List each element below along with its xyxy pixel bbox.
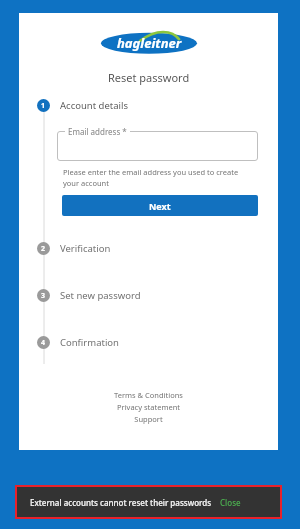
button[interactable]: 4 [19,336,278,349]
staticText: Email address * [68,126,127,137]
staticText: Please enter the email address you used … [63,167,254,188]
button[interactable]: Close [220,497,241,508]
staticText: 2 [41,244,46,254]
button[interactable]: Terms & Conditions [114,390,183,400]
staticText: External accounts cannot reset their pas… [30,497,212,508]
staticText: Terms & Conditions [114,390,183,400]
staticText: 4 [41,338,46,348]
staticText: Set new password [60,289,141,302]
staticText: Privacy statement [117,402,180,412]
button[interactable]: Privacy statement [117,402,180,412]
button[interactable]: Next [62,195,258,216]
staticText: Next [149,200,171,212]
staticText: Account details [60,99,128,112]
staticText: Verification [60,242,111,255]
button[interactable]: 2 [19,242,278,255]
staticText: 1 [41,101,46,111]
staticText: Support [134,414,163,424]
button[interactable]: 3 [19,289,278,302]
button[interactable]: Support [134,414,163,424]
staticText: Confirmation [60,336,119,349]
button[interactable] [57,131,258,161]
staticText: Close [220,497,241,508]
button[interactable]: External accounts cannot reset their pas… [17,487,280,517]
staticText: Reset password [108,70,190,85]
other: Hagleitner logo [101,28,197,58]
staticText: 3 [41,291,46,301]
staticText: hagleitner [117,34,182,52]
button[interactable]: 1 [19,99,278,112]
